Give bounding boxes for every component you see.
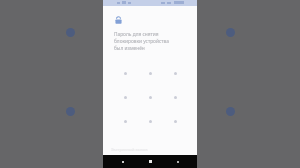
staticText: блокировки устройства	[114, 38, 169, 45]
button[interactable]: Экстренный вызов	[111, 147, 148, 152]
button[interactable]: Unlock pattern	[103, 64, 197, 130]
button[interactable]: Recent apps	[172, 156, 183, 167]
staticText: Экстренный вызов	[111, 147, 148, 152]
staticText: был изменён	[114, 45, 145, 52]
button[interactable]: Back	[117, 156, 128, 167]
button[interactable]: Home	[145, 156, 156, 167]
staticText: Пароль для снятия	[114, 31, 159, 38]
